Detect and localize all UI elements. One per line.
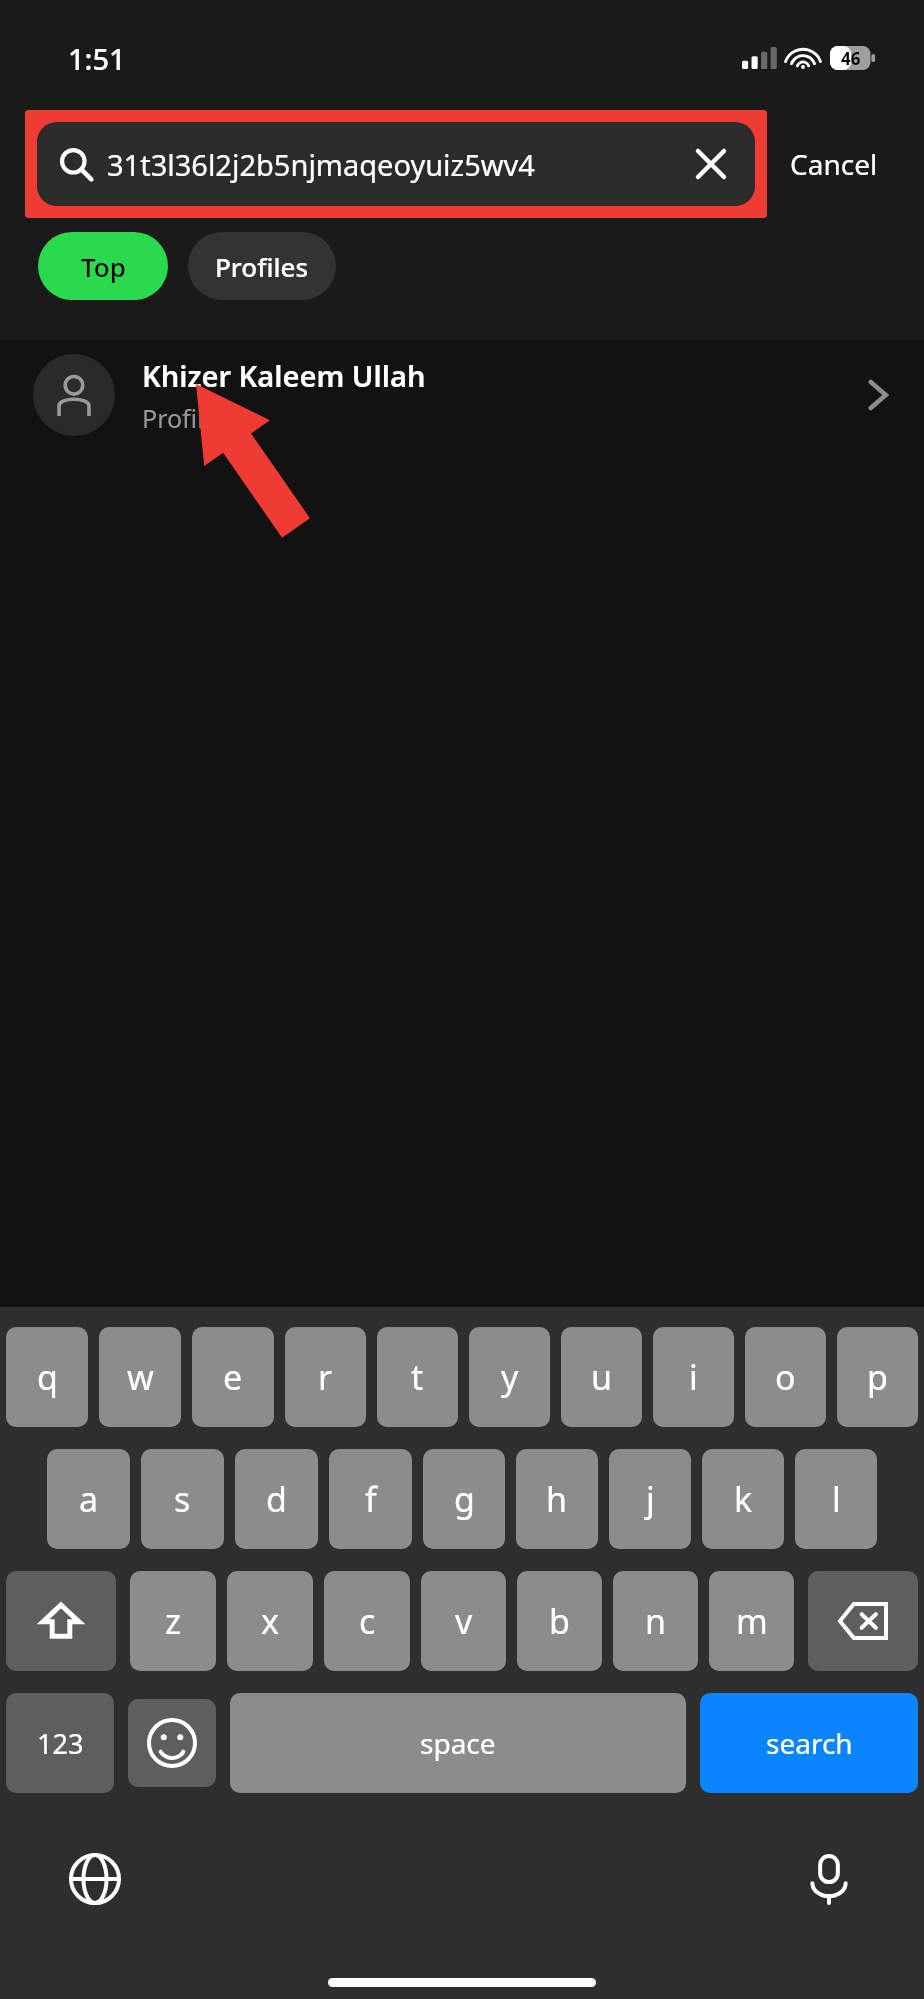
button[interactable]: space — [230, 1693, 686, 1793]
staticText: j — [646, 1476, 655, 1522]
button[interactable]: Cancel — [790, 110, 878, 218]
staticText: r — [318, 1354, 333, 1400]
button[interactable]: w — [99, 1327, 181, 1427]
button[interactable]: m — [709, 1571, 794, 1671]
staticText: space — [420, 1724, 496, 1762]
staticText: search — [766, 1724, 853, 1762]
button[interactable]: c — [324, 1571, 410, 1671]
button[interactable]: h — [516, 1449, 598, 1549]
button[interactable]: Clear search — [689, 142, 733, 186]
staticText: m — [736, 1598, 768, 1644]
button[interactable]: f — [329, 1449, 412, 1549]
staticText: 46 — [841, 47, 861, 70]
button[interactable]: x — [227, 1571, 313, 1671]
button[interactable]: e — [192, 1327, 274, 1427]
button[interactable]: 31t3l36l2j2b5njmaqeoyuiz5wv4 — [37, 122, 755, 206]
staticText: c — [359, 1598, 376, 1644]
staticText: o — [775, 1354, 796, 1400]
staticText: Cancel — [790, 145, 878, 183]
staticText: v — [455, 1598, 473, 1644]
staticText: p — [867, 1354, 888, 1400]
button[interactable]: z — [130, 1571, 216, 1671]
button[interactable]: i — [653, 1327, 734, 1427]
button[interactable]: search — [700, 1693, 918, 1793]
button[interactable]: p — [837, 1327, 918, 1427]
staticText: f — [365, 1476, 377, 1522]
button[interactable]: Backspace — [808, 1571, 918, 1671]
button[interactable]: Profiles — [188, 232, 336, 300]
staticText: k — [734, 1476, 753, 1522]
staticText: 1:51 — [68, 39, 126, 78]
button[interactable]: u — [561, 1327, 642, 1427]
staticText: Top — [81, 249, 126, 284]
staticText: Khizer Kaleem Ullah — [142, 356, 426, 395]
staticText: 123 — [37, 1725, 84, 1762]
staticText: x — [261, 1598, 279, 1644]
button[interactable]: o — [745, 1327, 826, 1427]
staticText: h — [546, 1476, 568, 1522]
button[interactable]: Khizer Kaleem Ullah — [0, 340, 924, 450]
button[interactable]: Emoji — [128, 1699, 216, 1787]
staticText: l — [832, 1476, 841, 1522]
button[interactable]: n — [613, 1571, 698, 1671]
button[interactable]: y — [469, 1327, 550, 1427]
button[interactable]: j — [609, 1449, 691, 1549]
button[interactable]: d — [235, 1449, 318, 1549]
button[interactable]: l — [795, 1449, 877, 1549]
staticText: y — [501, 1354, 519, 1400]
staticText: b — [549, 1598, 570, 1644]
staticText: s — [174, 1476, 191, 1522]
button[interactable]: 123 — [6, 1693, 114, 1793]
button[interactable]: Change keyboard — [60, 1844, 130, 1914]
staticText: Profile — [142, 401, 218, 435]
button[interactable]: a — [47, 1449, 130, 1549]
staticText: t — [411, 1354, 424, 1400]
button[interactable]: r — [285, 1327, 366, 1427]
button[interactable]: Shift — [6, 1571, 116, 1671]
button[interactable]: b — [517, 1571, 602, 1671]
staticText: i — [689, 1354, 698, 1400]
button[interactable]: t — [377, 1327, 458, 1427]
staticText: d — [266, 1476, 287, 1522]
staticText: g — [454, 1476, 475, 1522]
staticText: q — [37, 1354, 58, 1400]
button[interactable]: s — [141, 1449, 224, 1549]
staticText: w — [127, 1354, 154, 1400]
button[interactable]: g — [423, 1449, 505, 1549]
staticText: 31t3l36l2j2b5njmaqeoyuiz5wv4 — [107, 145, 681, 184]
staticText: Profiles — [215, 249, 309, 284]
button[interactable]: k — [702, 1449, 784, 1549]
button[interactable]: Dictate — [794, 1844, 864, 1914]
staticText: a — [79, 1476, 99, 1522]
button[interactable]: Top — [38, 232, 168, 300]
staticText: e — [223, 1354, 243, 1400]
staticText: n — [645, 1598, 667, 1644]
button[interactable]: v — [421, 1571, 506, 1671]
staticText: u — [591, 1354, 613, 1400]
staticText: z — [165, 1598, 181, 1644]
button[interactable]: q — [6, 1327, 88, 1427]
